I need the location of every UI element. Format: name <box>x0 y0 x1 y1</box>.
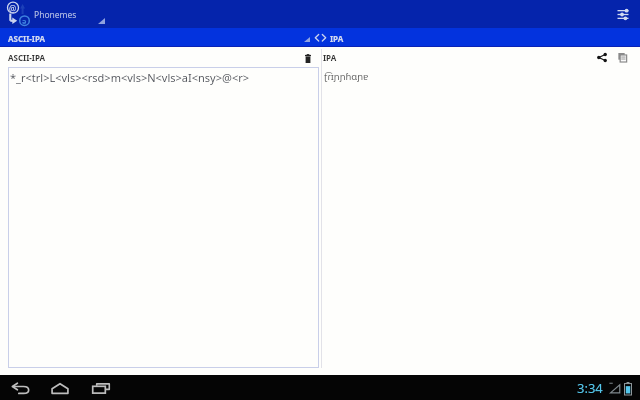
button[interactable]: Back <box>5 376 36 400</box>
staticText: @ <box>9 3 17 14</box>
button[interactable]: @ <box>0 0 110 28</box>
button[interactable]: IPA <box>312 28 372 47</box>
staticText: 3:34 <box>577 379 603 397</box>
staticText: ʈ͡ɾɪɲɲɦɑɲɐ <box>324 70 369 83</box>
button[interactable]: Recent apps <box>86 376 116 400</box>
button[interactable]: Home <box>45 376 75 400</box>
staticText: ASCII-IPA <box>8 52 46 63</box>
button[interactable]: Settings <box>612 3 634 25</box>
staticText: ASCII-IPA <box>8 33 46 44</box>
button[interactable]: Share <box>592 47 612 67</box>
staticText: ə <box>22 16 27 26</box>
staticText: Phonemes <box>34 9 77 21</box>
staticText: *_r<trl>L<vls><rsd>m<vls>N<vls>aI<nsy>@<… <box>10 70 250 85</box>
button[interactable]: Delete <box>298 48 318 68</box>
staticText: IPA <box>323 52 337 63</box>
button[interactable]: *_r<trl>L<vls><rsd>m<vls>N<vls>aI<nsy>@<… <box>8 67 319 368</box>
button[interactable]: Copy <box>612 47 632 67</box>
staticText: IPA <box>330 33 344 44</box>
button[interactable]: ASCII-IPA <box>0 28 312 47</box>
